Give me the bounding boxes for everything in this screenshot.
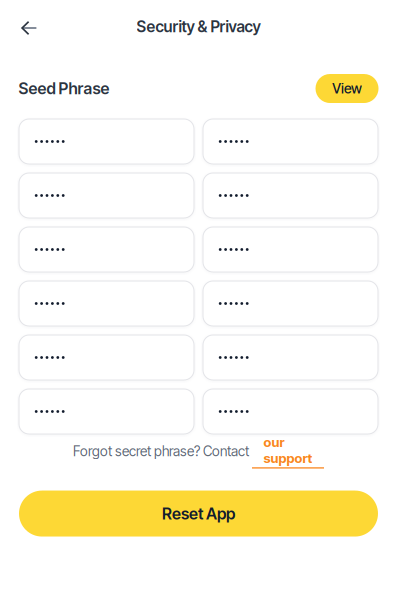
staticText: our support bbox=[263, 434, 312, 466]
staticText: View bbox=[332, 80, 362, 97]
staticText: Forgot secret phrase? Contact bbox=[73, 443, 252, 460]
button[interactable]: Back bbox=[8, 6, 48, 46]
staticText: Reset App bbox=[162, 504, 235, 523]
staticText: Seed Phrase bbox=[18, 79, 109, 98]
button[interactable]: View bbox=[315, 74, 378, 103]
button[interactable]: our support bbox=[252, 434, 324, 469]
button[interactable]: Reset App bbox=[19, 491, 378, 537]
staticText: Security & Privacy bbox=[136, 17, 260, 36]
